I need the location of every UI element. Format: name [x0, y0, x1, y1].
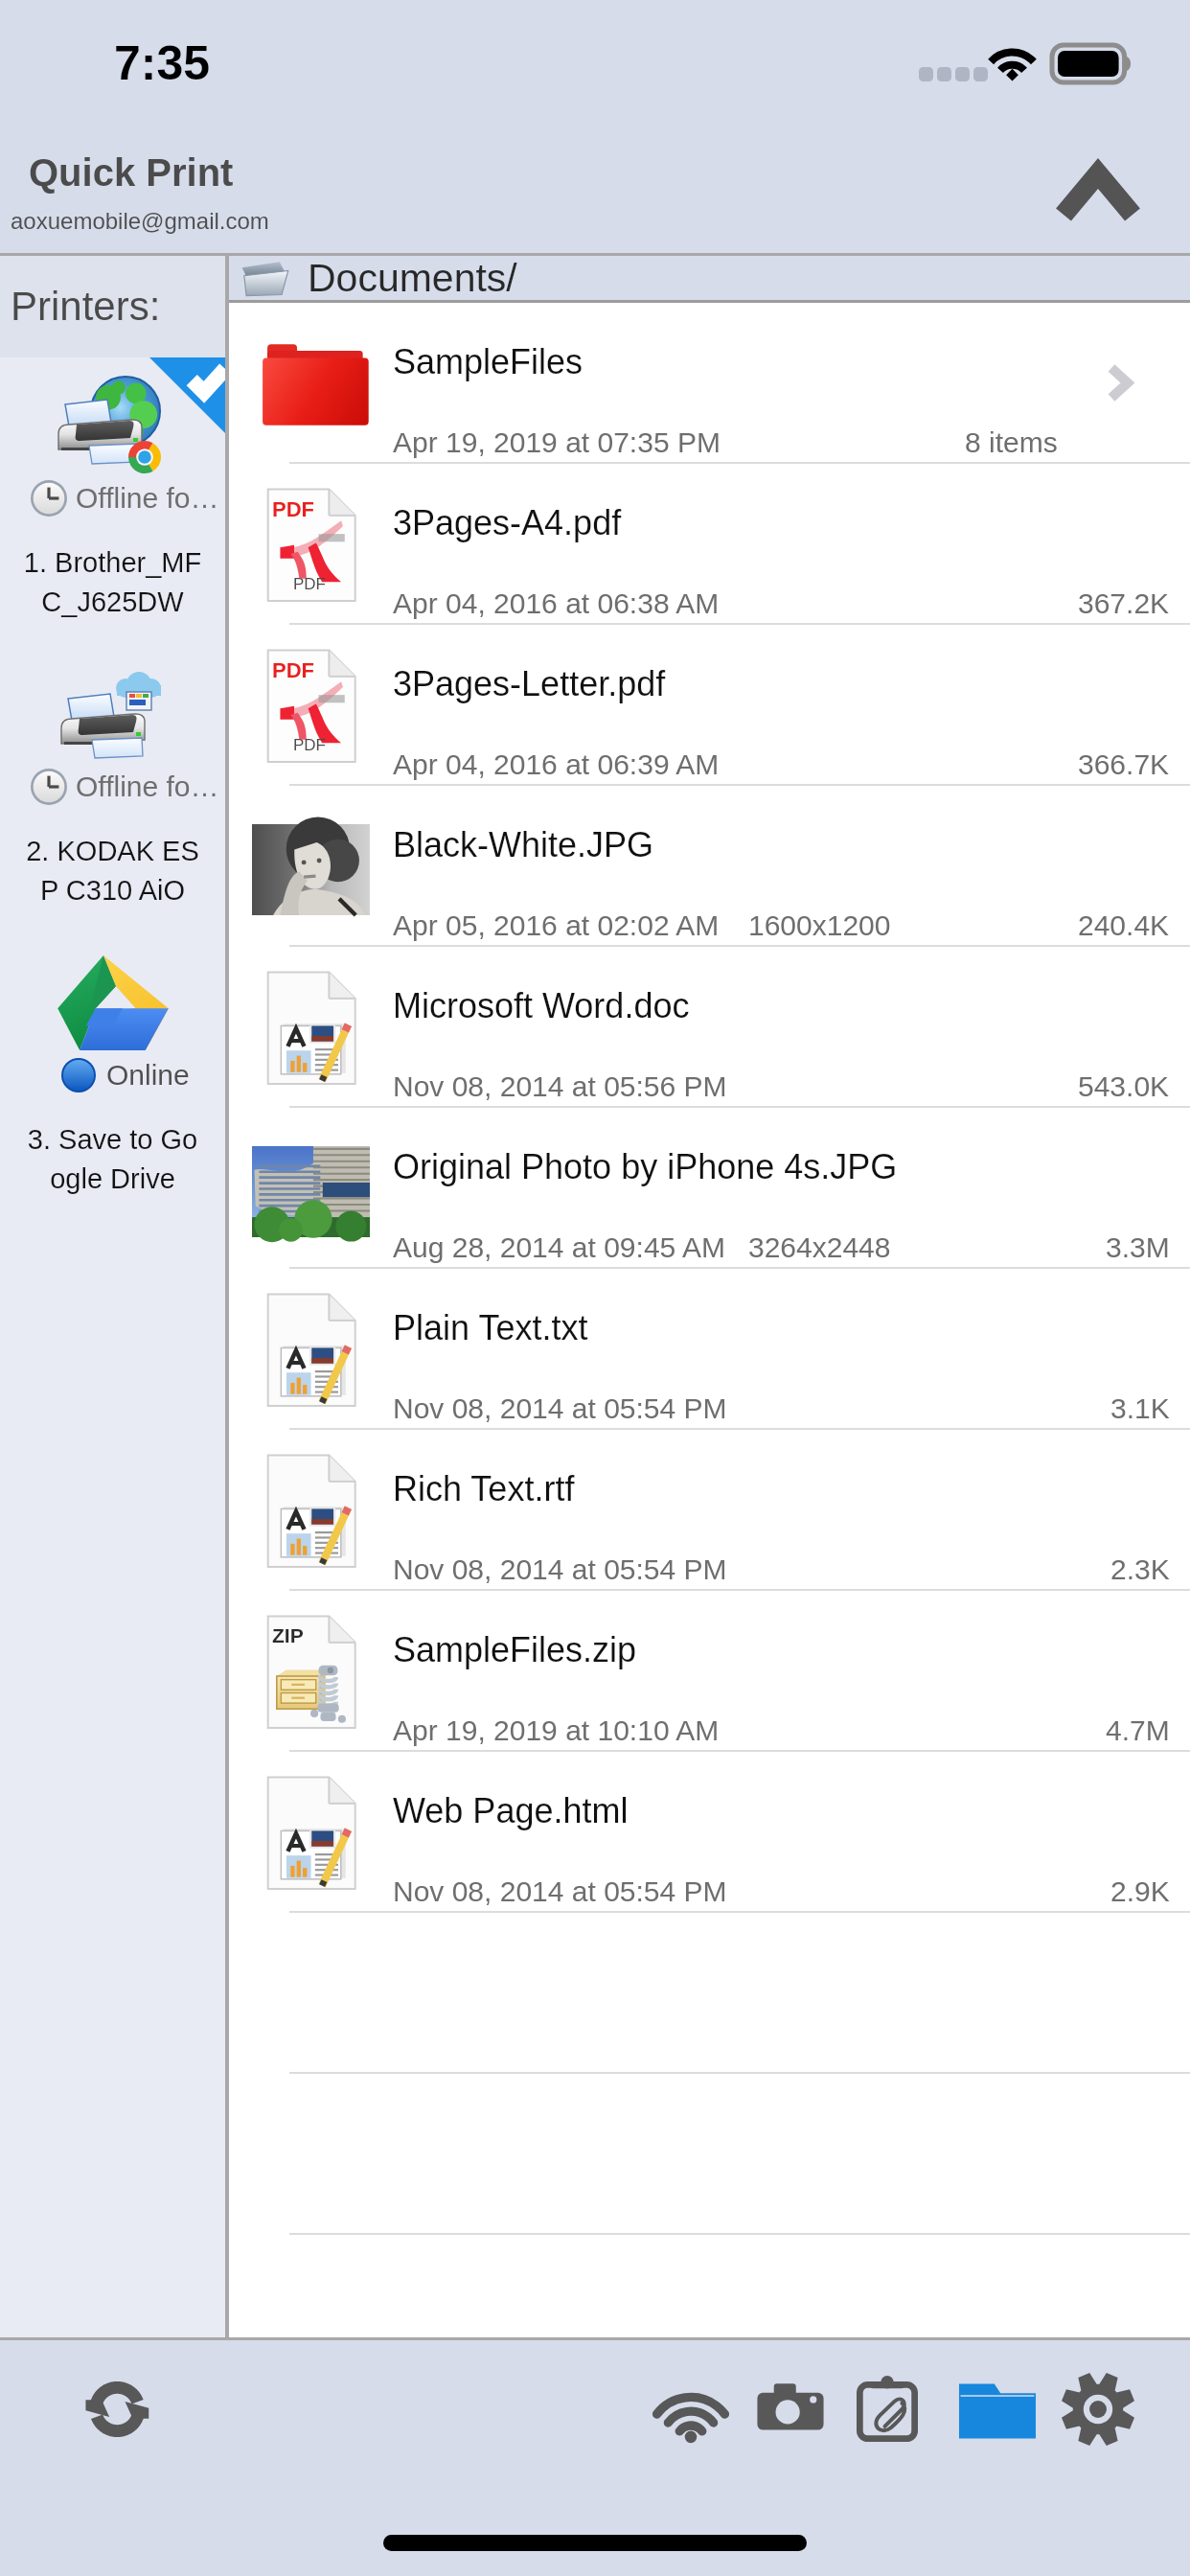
staticText: Apr 04, 2016 at 06:39 AM	[393, 748, 720, 781]
button[interactable]: Black-White.JPG	[229, 786, 1190, 947]
staticText: Microsoft Word.doc	[393, 986, 690, 1024]
staticText: 8 items	[965, 426, 1058, 459]
staticText: 3264x2448	[748, 1231, 891, 1264]
staticText: Nov 08, 2014 at 05:54 PM	[393, 1553, 727, 1586]
button[interactable]: Offline fo…	[0, 646, 225, 934]
staticText: PDF	[272, 658, 314, 682]
staticText: 3.1K	[1110, 1392, 1170, 1425]
button[interactable]: Wi-Fi connection	[647, 2365, 735, 2453]
staticText: 240.4K	[1078, 909, 1170, 942]
staticText: 1. Brother_MF C_J625DW	[0, 547, 225, 617]
staticText: ZIP	[272, 1624, 304, 1646]
staticText: 366.7K	[1078, 748, 1170, 781]
staticText: PDF	[293, 575, 326, 593]
staticText: 3. Save to Go ogle Drive	[0, 1124, 225, 1194]
staticText: Documents/	[308, 256, 517, 298]
staticText: Nov 08, 2014 at 05:54 PM	[393, 1875, 727, 1908]
staticText: PDF	[293, 736, 326, 754]
staticText: Apr 05, 2016 at 02:02 AM	[393, 909, 720, 942]
staticText: Apr 04, 2016 at 06:38 AM	[393, 587, 720, 620]
staticText: 4.7M	[1106, 1714, 1170, 1747]
staticText: Offline fo…	[76, 482, 219, 515]
button[interactable]: Files	[953, 2365, 1041, 2453]
button[interactable]: PDF	[229, 464, 1190, 625]
staticText: Printers:	[11, 284, 161, 329]
button[interactable]: Plain Text.txt	[229, 1269, 1190, 1430]
staticText: 1600x1200	[748, 909, 891, 942]
staticText: Apr 19, 2019 at 07:35 PM	[393, 426, 721, 459]
staticText: 2. KODAK ES P C310 AiO	[0, 836, 225, 906]
staticText: 3.3M	[1106, 1231, 1170, 1264]
staticText: 2.9K	[1110, 1875, 1170, 1908]
button[interactable]: Refresh	[72, 2365, 160, 2453]
button[interactable]: PDF	[229, 625, 1190, 786]
button[interactable]: Microsoft Word.doc	[229, 947, 1190, 1108]
staticText: Nov 08, 2014 at 05:56 PM	[393, 1070, 727, 1103]
staticText: SampleFiles.zip	[393, 1630, 637, 1668]
staticText: 3Pages-A4.pdf	[393, 503, 622, 541]
staticText: 3Pages-Letter.pdf	[393, 664, 666, 702]
staticText: Rich Text.rtf	[393, 1469, 575, 1507]
button[interactable]: Settings	[1054, 2365, 1142, 2453]
staticText: 7:35	[114, 36, 211, 90]
staticText: 543.0K	[1078, 1070, 1170, 1103]
staticText: 2.3K	[1110, 1553, 1170, 1586]
staticText: Offline fo…	[76, 770, 219, 803]
button[interactable]: Clipboard	[843, 2365, 931, 2453]
staticText: 367.2K	[1078, 587, 1170, 620]
button[interactable]: Original Photo by iPhone 4s.JPG	[229, 1108, 1190, 1269]
staticText: aoxuemobile@gmail.com	[11, 208, 269, 234]
button[interactable]: SampleFiles	[229, 303, 1190, 464]
button[interactable]: Web Page.html	[229, 1752, 1190, 1913]
staticText: Web Page.html	[393, 1791, 629, 1829]
button[interactable]: Rich Text.rtf	[229, 1430, 1190, 1591]
staticText: Quick Print	[29, 151, 234, 195]
staticText: Plain Text.txt	[393, 1308, 588, 1346]
staticText: Online	[106, 1059, 190, 1092]
staticText: Nov 08, 2014 at 05:54 PM	[393, 1392, 727, 1425]
staticText: SampleFiles	[393, 342, 584, 380]
button[interactable]: Camera	[746, 2365, 835, 2453]
staticText: Black-White.JPG	[393, 825, 654, 863]
button[interactable]: Collapse panel	[1044, 149, 1152, 238]
button[interactable]: Documents/	[229, 256, 1190, 300]
button[interactable]: Offline fo…	[0, 357, 225, 646]
button[interactable]: Online	[0, 934, 225, 1223]
staticText: Aug 28, 2014 at 09:45 AM	[393, 1231, 725, 1264]
button[interactable]: ZIP	[229, 1591, 1190, 1752]
staticText: PDF	[272, 497, 314, 521]
staticText: Original Photo by iPhone 4s.JPG	[393, 1147, 898, 1185]
staticText: Apr 19, 2019 at 10:10 AM	[393, 1714, 720, 1747]
